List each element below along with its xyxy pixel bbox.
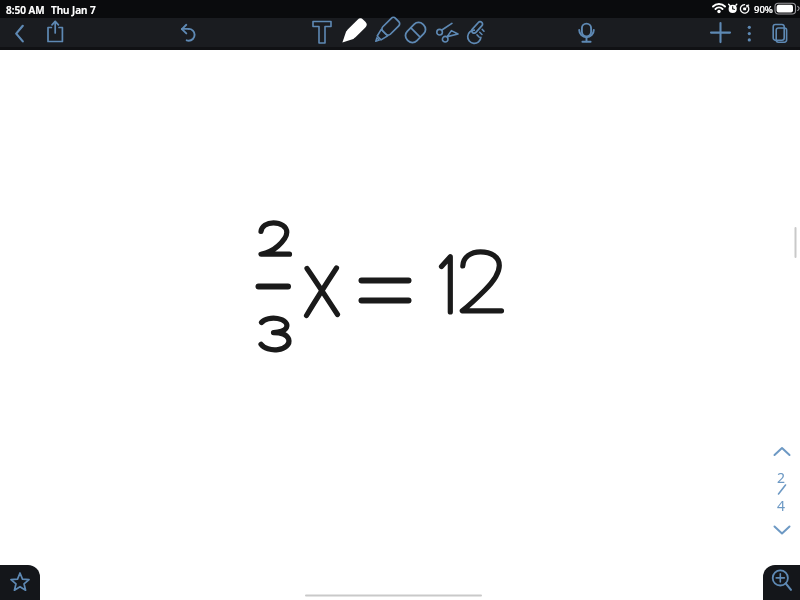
button[interactable] bbox=[574, 16, 596, 46]
button[interactable] bbox=[763, 565, 800, 600]
button[interactable] bbox=[402, 18, 428, 46]
button[interactable] bbox=[310, 18, 334, 46]
staticText: 90% bbox=[754, 3, 773, 16]
staticText: 8:50 AM bbox=[6, 3, 45, 17]
button[interactable] bbox=[433, 18, 461, 46]
button[interactable] bbox=[463, 18, 489, 46]
button[interactable] bbox=[44, 14, 66, 44]
button[interactable] bbox=[0, 565, 40, 600]
button[interactable] bbox=[178, 22, 200, 44]
button[interactable] bbox=[370, 18, 398, 46]
staticText: Thu Jan 7 bbox=[51, 3, 96, 17]
button[interactable] bbox=[10, 20, 32, 46]
staticText: 4 bbox=[777, 496, 786, 515]
staticText: 2 bbox=[777, 468, 786, 487]
button[interactable] bbox=[770, 442, 796, 460]
button[interactable] bbox=[338, 18, 366, 46]
button[interactable] bbox=[739, 20, 759, 45]
button[interactable] bbox=[770, 520, 796, 538]
button[interactable] bbox=[708, 20, 733, 45]
button[interactable] bbox=[768, 20, 792, 45]
